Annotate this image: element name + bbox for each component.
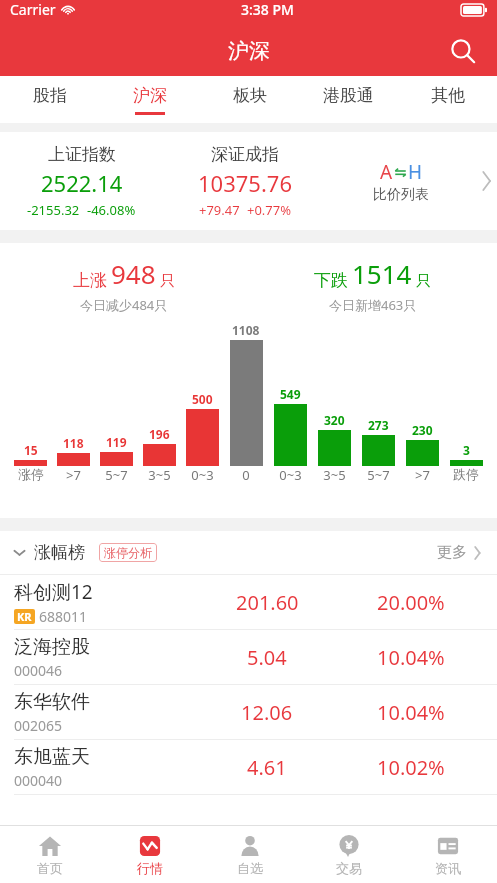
- staticText: 泛海控股: [14, 635, 90, 659]
- staticText: 深证成指: [211, 144, 279, 165]
- button[interactable]: 交易: [299, 826, 398, 883]
- staticText: 3: [463, 442, 470, 458]
- staticText: 上涨: [73, 270, 107, 291]
- staticText: 3~5: [323, 466, 346, 484]
- staticText: 交易: [336, 860, 362, 876]
- staticText: 4.61: [247, 754, 287, 781]
- button[interactable]: 科创测12: [0, 575, 497, 630]
- button[interactable]: 东华软件: [0, 685, 497, 740]
- button[interactable]: 板块: [200, 76, 299, 123]
- staticText: 002065: [14, 716, 63, 735]
- button[interactable]: 涨幅榜: [12, 542, 85, 563]
- staticText: 涨幅榜: [34, 542, 85, 563]
- staticText: 118: [63, 435, 84, 451]
- staticText: 5~7: [367, 466, 390, 484]
- staticText: 2522.14: [41, 168, 123, 198]
- staticText: 20.00%: [377, 589, 445, 616]
- staticText: 10.04%: [377, 644, 445, 671]
- button[interactable]: 上证指数: [0, 132, 497, 230]
- staticText: Carrier: [10, 0, 56, 19]
- staticText: 首页: [37, 860, 63, 876]
- staticText: 0~3: [191, 466, 214, 484]
- button[interactable]: 沪深: [100, 76, 200, 123]
- button[interactable]: 股指: [0, 76, 100, 123]
- staticText: 688011: [39, 607, 88, 626]
- staticText: KR: [17, 609, 32, 624]
- staticText: >7: [415, 466, 430, 484]
- staticText: 科创测12: [14, 579, 93, 605]
- staticText: 5~7: [105, 466, 128, 484]
- staticText: 000046: [14, 661, 63, 680]
- staticText: 今日新增463只: [329, 296, 417, 314]
- staticText: +79.47: [199, 201, 240, 219]
- staticText: 230: [412, 422, 433, 438]
- staticText: 0: [242, 466, 250, 484]
- staticText: 5.04: [247, 644, 287, 671]
- staticText: 12.06: [241, 699, 293, 726]
- staticText: 涨停分析: [104, 545, 152, 560]
- staticText: 000040: [14, 771, 63, 790]
- staticText: 10375.76: [198, 168, 292, 198]
- staticText: 273: [368, 417, 389, 433]
- button[interactable]: 东旭蓝天: [0, 740, 497, 795]
- staticText: 沪深: [133, 85, 167, 106]
- staticText: 3:38 PM: [241, 0, 294, 19]
- staticText: 今日减少484只: [80, 296, 168, 314]
- staticText: -2155.32: [27, 201, 80, 219]
- staticText: 10.04%: [377, 699, 445, 726]
- button[interactable]: 行情: [100, 826, 200, 883]
- staticText: 只: [160, 272, 175, 291]
- button[interactable]: 其他: [398, 76, 497, 123]
- staticText: 500: [192, 391, 213, 407]
- staticText: H: [408, 159, 423, 185]
- staticText: 更多: [437, 543, 467, 562]
- staticText: 东旭蓝天: [14, 745, 90, 769]
- staticText: 201.60: [236, 589, 299, 616]
- staticText: 上证指数: [48, 144, 116, 165]
- staticText: 下跌: [314, 270, 348, 291]
- button[interactable]: 港股通: [299, 76, 398, 123]
- staticText: 320: [324, 412, 345, 428]
- staticText: -46.08%: [87, 201, 136, 219]
- staticText: 只: [416, 272, 431, 291]
- staticText: 3~5: [148, 466, 171, 484]
- staticText: 跌停: [453, 466, 479, 482]
- staticText: A: [380, 159, 393, 185]
- button[interactable]: 泛海控股: [0, 630, 497, 685]
- staticText: 119: [106, 434, 127, 450]
- staticText: 0~3: [279, 466, 302, 484]
- staticText: 1514: [352, 256, 412, 291]
- staticText: 资讯: [435, 860, 461, 876]
- button[interactable]: 更多: [437, 543, 485, 562]
- staticText: 板块: [233, 85, 267, 106]
- staticText: 196: [149, 426, 170, 442]
- button[interactable]: 自选: [200, 826, 299, 883]
- staticText: 其他: [431, 85, 465, 106]
- button[interactable]: Search: [441, 29, 485, 73]
- button[interactable]: 资讯: [398, 826, 497, 883]
- staticText: 15: [24, 442, 38, 458]
- staticText: >7: [66, 466, 81, 484]
- staticText: 沪深: [228, 38, 270, 64]
- staticText: +0.77%: [247, 201, 292, 219]
- staticText: 549: [280, 386, 301, 402]
- button[interactable]: 涨停分析: [104, 545, 152, 560]
- button[interactable]: 首页: [0, 826, 100, 883]
- staticText: 涨停: [18, 466, 44, 482]
- staticText: 比价列表: [373, 186, 429, 204]
- staticText: 948: [111, 256, 156, 291]
- staticText: 1108: [232, 322, 260, 338]
- staticText: 自选: [237, 860, 263, 876]
- staticText: 东华软件: [14, 690, 90, 714]
- staticText: 10.02%: [377, 754, 445, 781]
- staticText: 港股通: [323, 85, 374, 106]
- staticText: 股指: [33, 85, 67, 106]
- staticText: 行情: [137, 860, 163, 876]
